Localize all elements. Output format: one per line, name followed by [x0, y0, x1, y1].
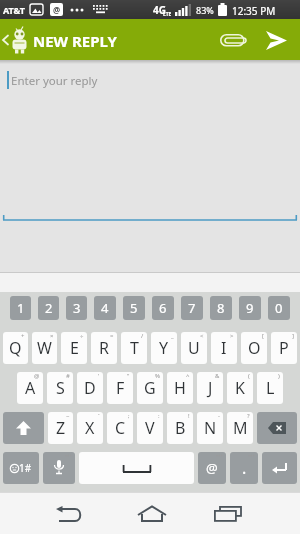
staticText: : — [158, 412, 160, 420]
button[interactable]: B — [167, 412, 193, 444]
staticText: % — [155, 372, 160, 380]
staticText: V — [145, 417, 155, 439]
staticText: ) — [278, 372, 280, 380]
staticText: 1# — [19, 461, 32, 475]
button[interactable]: Z — [48, 412, 73, 444]
staticText: _ — [171, 332, 174, 340]
button[interactable]: P — [271, 332, 297, 364]
button[interactable]: 8 — [210, 296, 232, 320]
button[interactable]: U — [181, 332, 207, 364]
staticText: ] — [292, 332, 294, 340]
button[interactable]: Q — [3, 332, 28, 364]
staticText: F — [116, 377, 125, 399]
staticText: M — [233, 417, 248, 439]
button[interactable]: 0 — [268, 296, 290, 320]
button[interactable]: Y — [151, 332, 177, 364]
staticText: - — [218, 412, 220, 420]
button[interactable] — [3, 412, 44, 444]
button[interactable]: S — [47, 372, 73, 404]
button[interactable]: X — [77, 412, 103, 444]
button[interactable] — [258, 27, 294, 53]
staticText: S — [56, 377, 65, 399]
button[interactable] — [262, 452, 297, 484]
staticText: D — [84, 377, 96, 399]
button[interactable]: 2 — [38, 296, 59, 320]
staticText: ÷ — [80, 332, 84, 340]
button[interactable] — [204, 496, 252, 532]
staticText: N — [204, 417, 217, 439]
button[interactable]: L — [257, 372, 283, 404]
button[interactable]: 3 — [66, 296, 87, 320]
button[interactable]: I — [211, 332, 237, 364]
staticText: ( — [248, 372, 250, 380]
staticText: 9 — [246, 299, 254, 317]
button[interactable] — [45, 496, 93, 532]
button[interactable]: N — [197, 412, 223, 444]
button[interactable]: 6 — [152, 296, 174, 320]
button[interactable]: . — [230, 452, 258, 484]
button[interactable]: ••• — [43, 452, 75, 484]
button[interactable]: V — [137, 412, 163, 444]
staticText: G — [144, 377, 156, 399]
button[interactable]: T — [121, 332, 147, 364]
staticText: @ — [53, 4, 61, 15]
button[interactable] — [257, 412, 297, 444]
button[interactable] — [128, 496, 176, 532]
staticText: 12:35 PM — [232, 4, 276, 18]
staticText: & — [215, 372, 220, 380]
staticText: 6 — [159, 299, 167, 317]
button[interactable]: 5 — [123, 296, 145, 320]
staticText: ? — [247, 412, 250, 420]
staticText: ' — [98, 372, 100, 380]
button[interactable]: C — [107, 412, 133, 444]
button[interactable]: Enter your reply — [0, 60, 300, 272]
staticText: 4G — [153, 3, 166, 17]
button[interactable]: G — [137, 372, 163, 404]
staticText: T — [130, 337, 139, 359]
button[interactable]: 7 — [181, 296, 203, 320]
staticText: C — [115, 417, 126, 439]
staticText: ` — [98, 412, 100, 420]
button[interactable]: E — [61, 332, 87, 364]
button[interactable]: A — [17, 372, 43, 404]
button[interactable]: F — [107, 372, 133, 404]
button[interactable]: M — [227, 412, 253, 444]
button[interactable]: H — [167, 372, 193, 404]
button[interactable]: 1 — [10, 296, 31, 320]
button[interactable] — [79, 452, 194, 484]
staticText: P — [279, 337, 289, 359]
staticText: ; — [128, 412, 130, 420]
button[interactable]: W — [32, 332, 57, 364]
staticText: " — [127, 372, 130, 380]
staticText: [ — [262, 332, 264, 340]
button[interactable]: 9 — [239, 296, 261, 320]
staticText: Y — [159, 337, 169, 359]
staticText: ! — [188, 412, 190, 420]
staticText: . — [242, 457, 247, 479]
staticText: # — [66, 372, 70, 380]
button[interactable]: @ — [198, 452, 226, 484]
button[interactable]: J — [197, 372, 223, 404]
staticText: < — [200, 332, 204, 340]
staticText: J — [208, 377, 213, 399]
staticText: B — [175, 417, 186, 439]
button[interactable]: K — [227, 372, 253, 404]
button[interactable]: D — [77, 372, 103, 404]
button[interactable]: 4 — [94, 296, 116, 320]
button[interactable] — [214, 27, 252, 53]
staticText: 2 — [45, 299, 53, 317]
staticText: > — [230, 332, 234, 340]
button[interactable]: 1# — [3, 452, 39, 484]
button[interactable]: R — [91, 332, 117, 364]
staticText: 8 — [217, 299, 225, 317]
staticText: W — [37, 337, 52, 359]
staticText: H — [174, 377, 186, 399]
staticText: × — [50, 332, 54, 340]
staticText: = — [110, 332, 114, 340]
staticText: @ — [206, 459, 218, 477]
button[interactable]: O — [241, 332, 267, 364]
staticText: L — [266, 377, 275, 399]
staticText: 3 — [73, 299, 81, 317]
